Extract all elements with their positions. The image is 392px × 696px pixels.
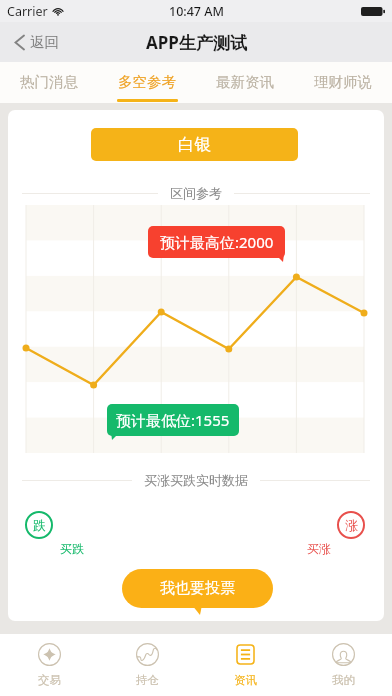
staticText: 预计最低位:1555	[116, 410, 230, 430]
staticText: 预计最高位:2000	[160, 232, 274, 252]
button[interactable]: 涨	[337, 511, 365, 539]
button[interactable]: 返回	[0, 22, 392, 62]
staticText: 持仓	[136, 673, 159, 687]
staticText: 理财师说	[314, 73, 372, 91]
staticText: 买涨买跌实时数据	[144, 472, 248, 488]
staticText: 涨	[345, 517, 358, 533]
staticText: 多空参考	[118, 73, 176, 91]
staticText: 我的	[332, 673, 355, 687]
staticText: 资讯	[234, 673, 257, 687]
staticText: 返回	[30, 33, 59, 51]
staticText: 我也要投票	[160, 579, 235, 598]
staticText: 10:47 AM	[169, 3, 224, 20]
button[interactable]: 资讯	[196, 634, 294, 696]
staticText: 最新资讯	[216, 73, 274, 91]
button[interactable]: 白银	[91, 128, 298, 161]
button[interactable]: 理财师说	[294, 62, 392, 103]
button[interactable]: 最新资讯	[196, 62, 294, 103]
staticText: APP生产测试	[146, 31, 247, 54]
staticText: 买涨	[307, 541, 331, 556]
staticText: 交易	[38, 673, 61, 687]
staticText: 买跌	[60, 541, 84, 556]
button[interactable]: 热门消息	[0, 62, 98, 103]
button[interactable]: 跌	[25, 511, 53, 539]
button[interactable]: 交易	[0, 634, 98, 696]
button[interactable]: 我的	[294, 634, 392, 696]
button[interactable]: 我也要投票	[122, 569, 273, 615]
staticText: 跌	[33, 517, 46, 533]
staticText: 区间参考	[170, 185, 222, 201]
staticText: 白银	[178, 134, 211, 155]
staticText: Carrier	[7, 3, 48, 20]
button[interactable]: 多空参考	[98, 62, 196, 103]
button[interactable]: 持仓	[98, 634, 196, 696]
staticText: 热门消息	[20, 73, 78, 91]
